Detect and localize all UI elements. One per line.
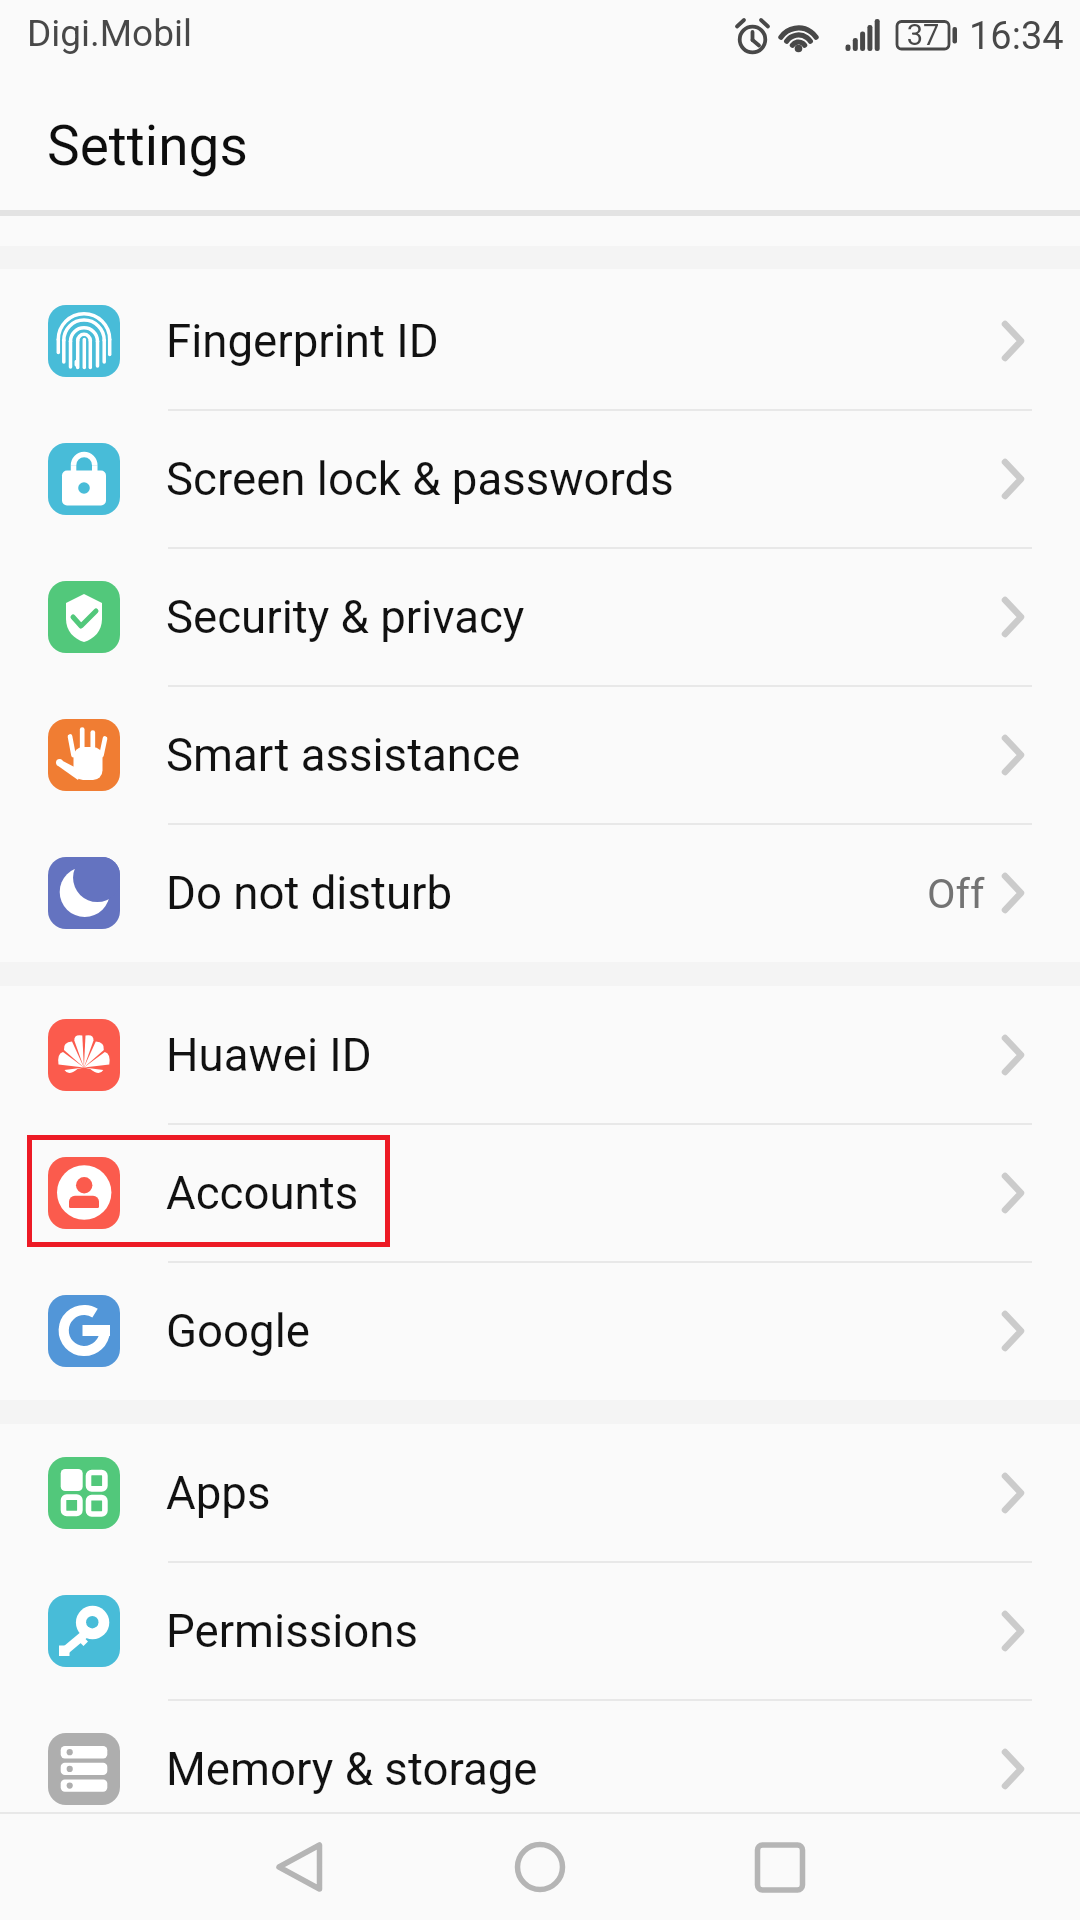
staticText: 37 (897, 18, 949, 52)
staticText: Memory & storage (166, 1743, 538, 1796)
button[interactable]: Fingerprint ID (0, 272, 1080, 410)
button[interactable]: Recent apps (720, 1821, 840, 1913)
button[interactable]: Apps (0, 1424, 1080, 1562)
staticText: Huawei ID (166, 1029, 372, 1082)
staticText: Smart assistance (166, 729, 521, 782)
staticText: Fingerprint ID (166, 315, 439, 368)
button[interactable]: Permissions (0, 1562, 1080, 1700)
button[interactable]: Security & privacy (0, 548, 1080, 686)
button[interactable]: Huawei ID (0, 986, 1080, 1124)
staticText: Digi.Mobil (27, 12, 192, 55)
staticText: Screen lock & passwords (166, 453, 674, 506)
button[interactable]: Smart assistance (0, 686, 1080, 824)
staticText: Apps (166, 1467, 271, 1520)
staticText: Accounts (166, 1167, 359, 1220)
staticText: Settings (47, 114, 248, 178)
button[interactable]: Memory & storage (0, 1700, 1080, 1838)
button[interactable]: Screen lock & passwords (0, 410, 1080, 548)
button[interactable]: Back (239, 1821, 359, 1913)
button[interactable]: Do not disturb (0, 824, 1080, 962)
staticText: Google (166, 1305, 310, 1358)
staticText: Security & privacy (166, 591, 525, 644)
button[interactable]: Accounts (0, 1124, 1080, 1262)
staticText: Do not disturb (166, 867, 453, 920)
staticText: Off (927, 869, 985, 918)
staticText: Permissions (166, 1605, 419, 1658)
staticText: 16:34 (969, 14, 1064, 59)
button[interactable]: Google (0, 1262, 1080, 1400)
button[interactable]: Home (480, 1821, 600, 1913)
